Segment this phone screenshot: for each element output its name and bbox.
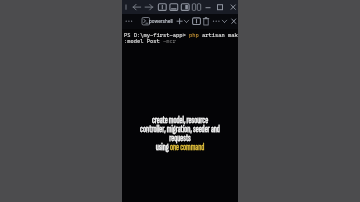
button[interactable]: New tab [175,15,185,25]
button[interactable]: powershell [140,15,175,27]
button[interactable]: Maximize [214,2,224,12]
staticText: PS D:\my-first-app> php artisan make [124,32,238,38]
staticText: create model, resource controller, migra… [140,115,220,152]
button[interactable]: Minimize [202,2,212,12]
staticText: powershell [149,19,173,25]
button[interactable]: Close window [227,2,237,12]
button[interactable]: Forward [145,2,154,11]
staticText: :model Post -mcr [124,38,177,44]
button[interactable]: Back [133,2,142,11]
button[interactable]: Close tab [228,15,238,25]
button[interactable]: Close pane [202,15,212,25]
